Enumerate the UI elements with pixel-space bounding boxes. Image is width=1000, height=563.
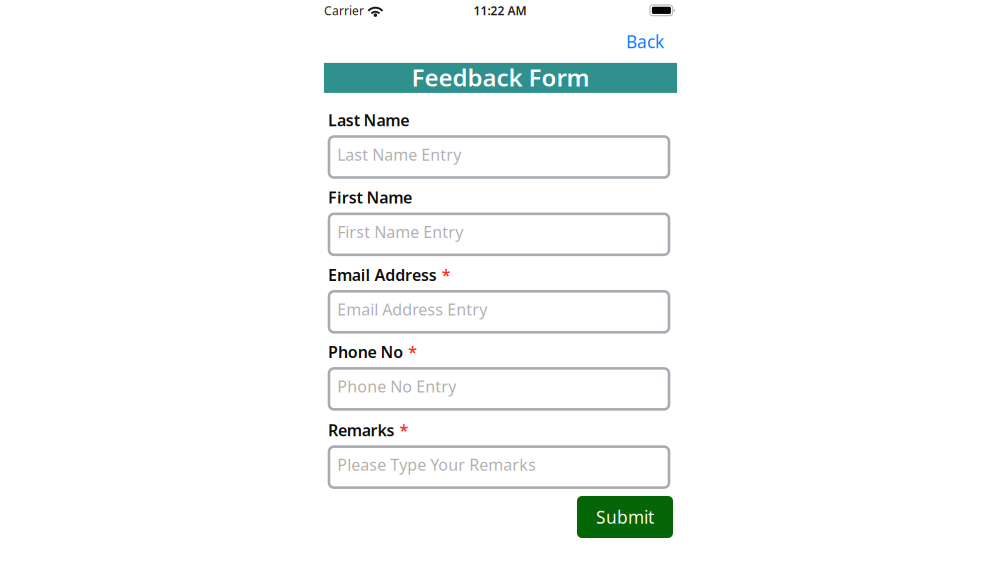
button[interactable]: Phone No Entry: [329, 368, 669, 409]
button[interactable]: Submit: [577, 496, 673, 538]
staticText: Email Address Entry: [337, 299, 487, 320]
staticText: Phone No Entry: [337, 376, 456, 397]
button[interactable]: Last Name Entry: [329, 136, 669, 177]
staticText: Last Name: [328, 109, 409, 131]
staticText: *: [442, 264, 451, 285]
staticText: *: [408, 341, 417, 362]
staticText: Phone No: [328, 341, 403, 362]
button[interactable]: First Name Entry: [329, 214, 669, 255]
staticText: Submit: [596, 505, 654, 528]
staticText: 11:22 AM: [473, 2, 526, 18]
staticText: Carrier: [324, 2, 364, 18]
button[interactable]: Email Address Entry: [329, 291, 669, 332]
button[interactable]: Please Type Your Remarks: [329, 447, 669, 488]
staticText: Last Name Entry: [337, 144, 461, 165]
button[interactable]: Back: [552, 26, 664, 56]
staticText: First Name Entry: [337, 221, 463, 242]
staticText: Email Address: [328, 264, 437, 285]
staticText: First Name: [328, 187, 412, 208]
staticText: *: [399, 419, 408, 441]
staticText: Feedback Form: [411, 61, 589, 93]
staticText: Remarks: [328, 419, 394, 441]
staticText: Please Type Your Remarks: [337, 454, 536, 475]
staticText: Back: [626, 30, 664, 53]
